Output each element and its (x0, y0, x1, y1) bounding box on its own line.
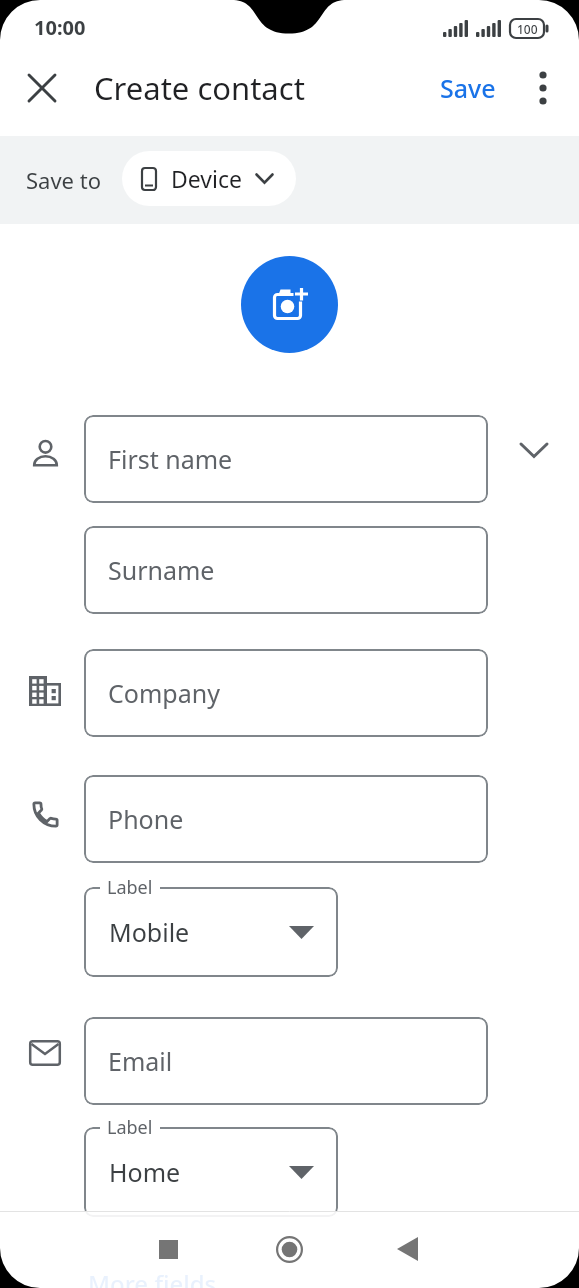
staticText: Save (440, 71, 496, 105)
button[interactable]: First name (84, 415, 488, 503)
button[interactable]: Phone (84, 775, 488, 863)
button[interactable] (383, 1225, 431, 1273)
staticText: Label (107, 1115, 153, 1140)
staticText: Create contact (94, 67, 305, 109)
button[interactable]: Device (122, 151, 296, 206)
staticText: Surname (108, 553, 215, 587)
button[interactable]: Save (428, 64, 508, 112)
button[interactable] (144, 1225, 192, 1273)
button[interactable] (519, 64, 567, 112)
staticText: Label (107, 875, 153, 900)
button[interactable]: Home (84, 1127, 338, 1217)
staticText: First name (108, 442, 233, 476)
button[interactable] (265, 1225, 313, 1273)
button[interactable] (510, 426, 558, 474)
button[interactable]: Company (84, 649, 488, 737)
button[interactable]: Surname (84, 526, 488, 614)
staticText: Home (109, 1155, 181, 1189)
staticText: Mobile (109, 915, 190, 949)
staticText: 100 (517, 21, 538, 37)
button[interactable] (18, 64, 66, 112)
button[interactable]: More fields (88, 1267, 217, 1288)
staticText: More fields (88, 1267, 217, 1288)
button[interactable]: Mobile (84, 887, 338, 977)
staticText: Company (108, 676, 220, 710)
button[interactable] (241, 256, 338, 353)
staticText: Phone (108, 802, 184, 836)
staticText: 10:00 (34, 14, 86, 41)
staticText: Save to (26, 165, 101, 195)
button[interactable]: Email (84, 1017, 488, 1105)
staticText: Email (108, 1044, 173, 1078)
staticText: Device (171, 163, 242, 194)
